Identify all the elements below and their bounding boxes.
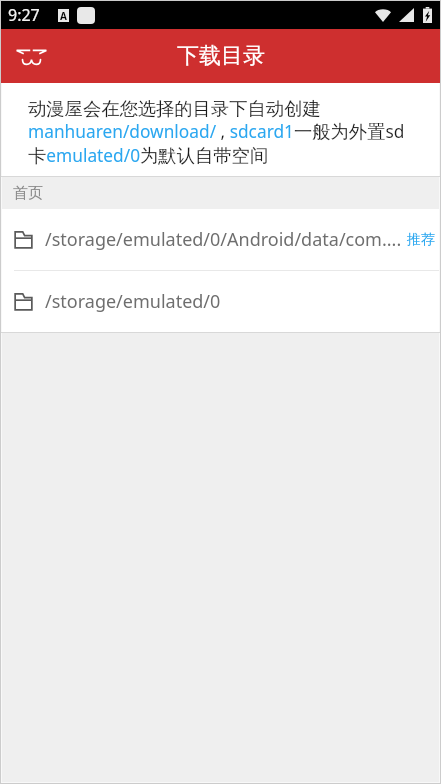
staticText: A	[60, 9, 67, 22]
button[interactable]: /storage/emulated/0/Android/data/com....	[2, 209, 439, 270]
staticText: 首页	[13, 184, 43, 203]
staticText: /storage/emulated/0	[45, 289, 435, 314]
staticText: /storage/emulated/0/Android/data/com....	[45, 227, 403, 252]
staticText: 动漫屋会在您选择的目录下自动创建manhuaren/download/ , sd…	[28, 97, 417, 167]
staticText: 下载目录	[177, 42, 265, 70]
button[interactable]: /storage/emulated/0	[2, 271, 439, 332]
staticText: 推荐	[407, 231, 435, 249]
staticText: 9:27	[8, 4, 40, 26]
button[interactable]: Home	[10, 33, 52, 81]
